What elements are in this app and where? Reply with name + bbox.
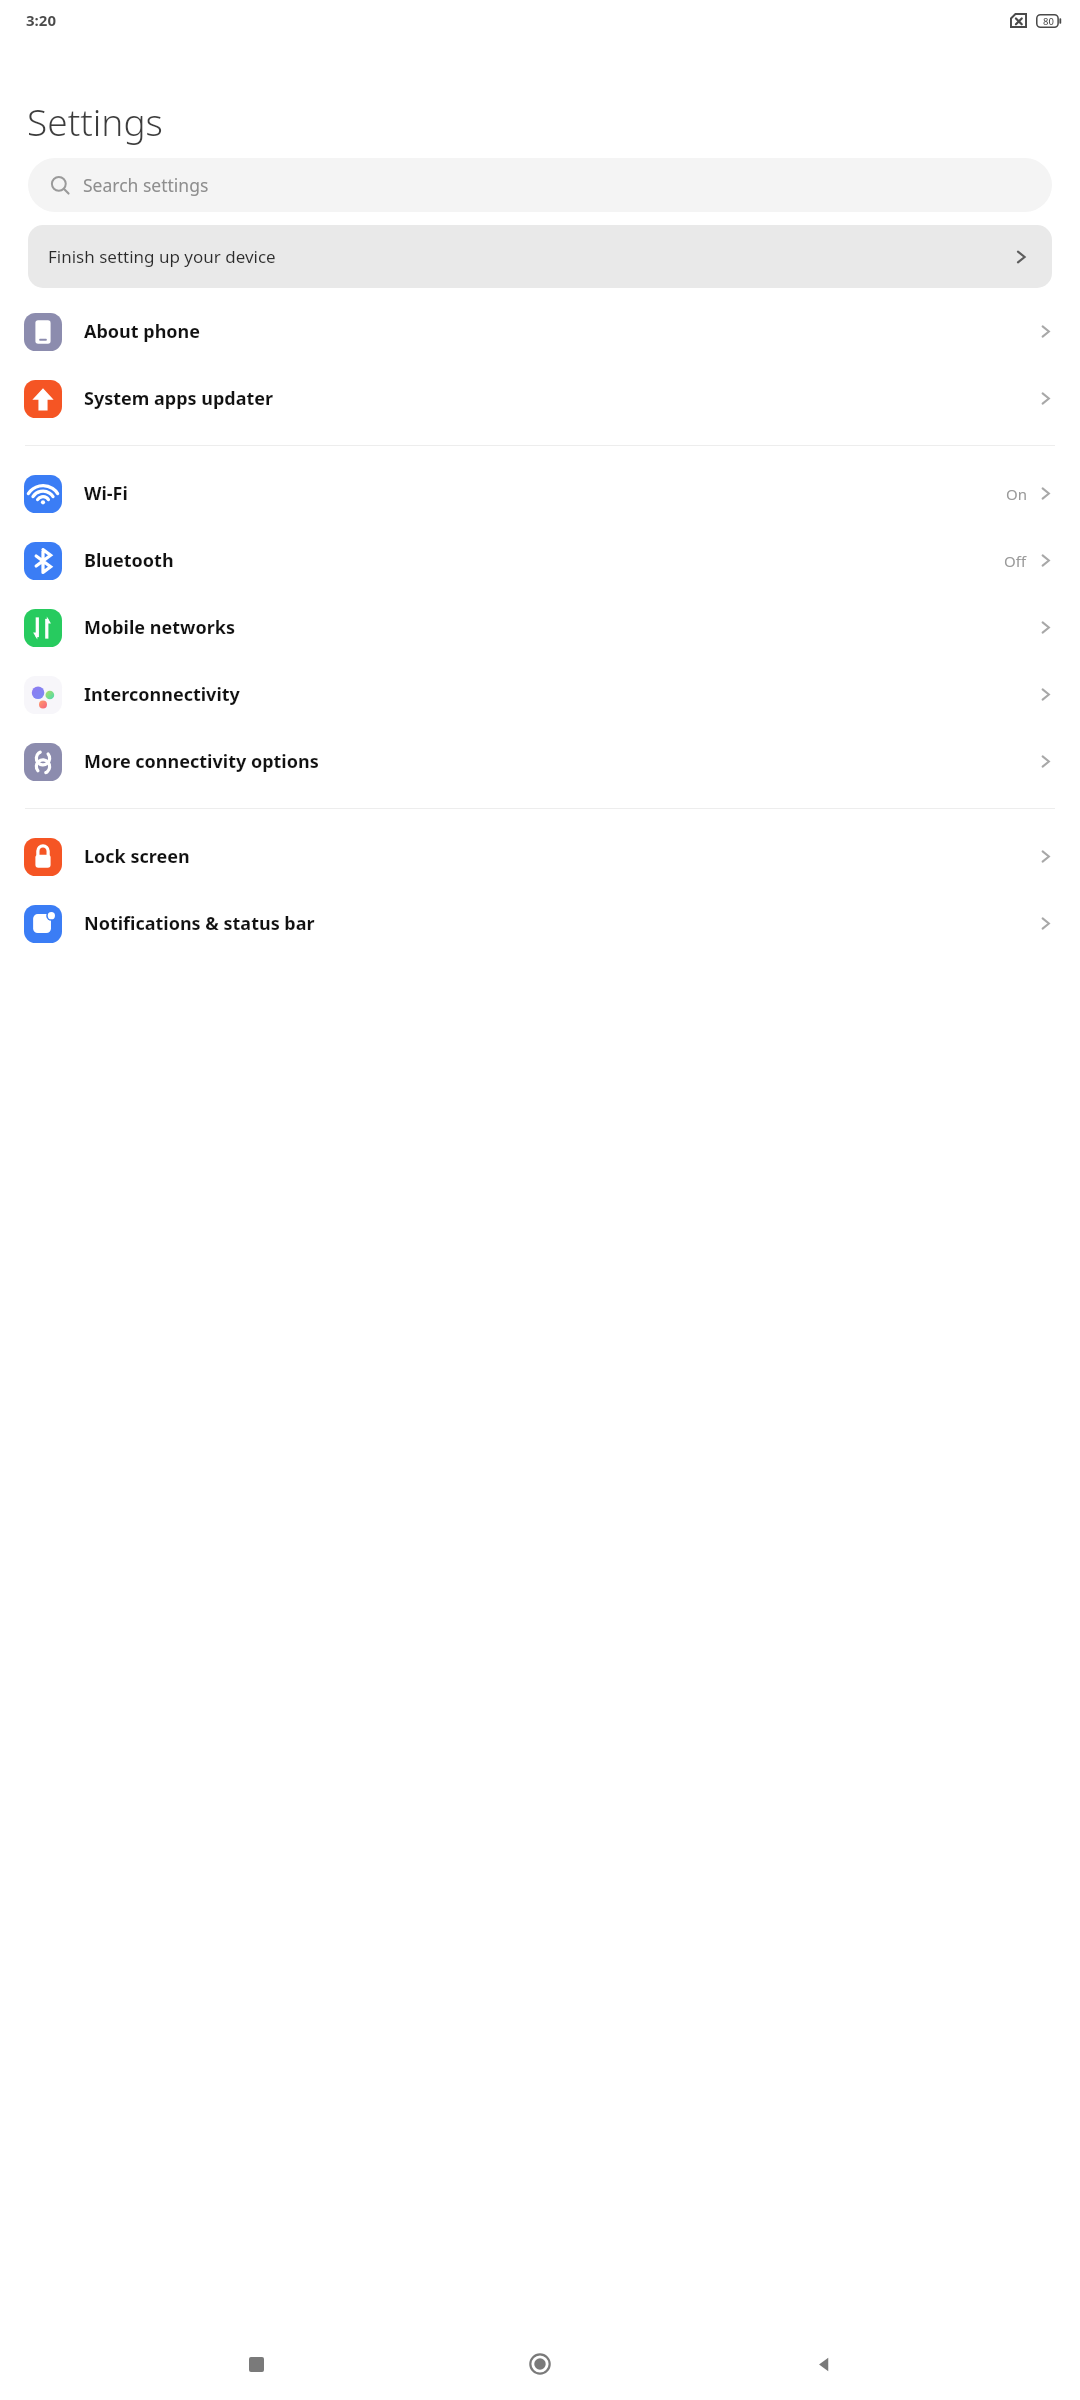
button[interactable]: System apps updater [0, 365, 1080, 432]
button[interactable]: Lock screen [0, 823, 1080, 890]
staticText: 80 [1043, 15, 1054, 28]
staticText: Mobile networks [84, 615, 1037, 640]
staticText: Off [1004, 551, 1027, 571]
button[interactable]: Wi-Fi [0, 460, 1080, 527]
button[interactable]: Back [796, 2336, 852, 2392]
staticText: Settings [27, 96, 163, 146]
button[interactable]: Interconnectivity [0, 661, 1080, 728]
button[interactable]: Notifications & status bar [0, 890, 1080, 957]
button[interactable]: Finish setting up your device [28, 225, 1052, 288]
button[interactable]: Search settings [28, 158, 1052, 212]
button[interactable]: About phone [0, 298, 1080, 365]
button[interactable]: More connectivity options [0, 728, 1080, 795]
staticText: Notifications & status bar [84, 911, 1037, 936]
button[interactable]: Recents [228, 2336, 284, 2392]
staticText: Search settings [83, 173, 209, 197]
staticText: More connectivity options [84, 749, 1037, 774]
button[interactable]: Mobile networks [0, 594, 1080, 661]
staticText: Wi-Fi [84, 481, 1006, 506]
staticText: Bluetooth [84, 548, 1004, 573]
staticText: On [1006, 484, 1027, 504]
staticText: About phone [84, 319, 1037, 344]
staticText: Interconnectivity [84, 682, 1037, 707]
staticText: Lock screen [84, 844, 1037, 869]
button[interactable]: Bluetooth [0, 527, 1080, 594]
button[interactable]: Home [512, 2336, 568, 2392]
staticText: 3:20 [26, 10, 56, 30]
staticText: Finish setting up your device [48, 245, 1012, 268]
staticText: System apps updater [84, 386, 1037, 411]
